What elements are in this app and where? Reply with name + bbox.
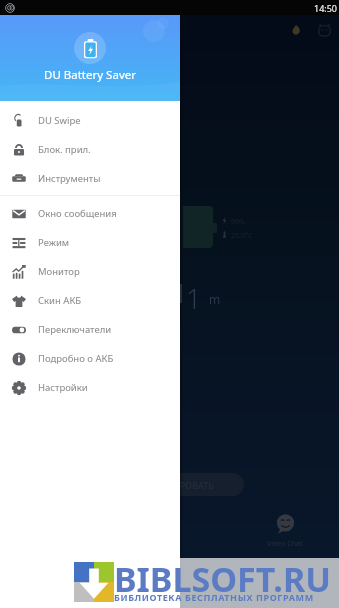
staticText: Монитор bbox=[38, 265, 80, 278]
staticText: Скин АКБ bbox=[38, 294, 82, 307]
button[interactable]: Настройки bbox=[0, 373, 180, 402]
button[interactable]: Profile bbox=[316, 22, 332, 38]
button[interactable]: Переключатели bbox=[0, 315, 180, 344]
button[interactable]: DU Swipe bbox=[0, 106, 180, 135]
button[interactable]: Блок. прил. bbox=[0, 135, 180, 164]
button[interactable]: Скин АКБ bbox=[0, 286, 180, 315]
button[interactable]: Монитор bbox=[0, 257, 180, 286]
staticText: 14:50 bbox=[314, 2, 338, 14]
button[interactable]: Boost bbox=[288, 22, 304, 38]
staticText: 1 bbox=[186, 280, 202, 317]
button[interactable]: ОПТИМИЗИРОВАТЬ bbox=[96, 473, 244, 496]
button[interactable]: Режим bbox=[0, 228, 180, 257]
button[interactable]: Подробно о АКБ bbox=[0, 344, 180, 373]
staticText: Настройки bbox=[38, 381, 88, 394]
staticText: Блок. прил. bbox=[38, 143, 91, 156]
staticText: ОПТИМИЗИРОВАТЬ bbox=[127, 479, 214, 491]
staticText: Подробно о АКБ bbox=[38, 352, 114, 365]
button[interactable]: Окно сообщения bbox=[0, 199, 180, 228]
other: Status icon bbox=[5, 3, 15, 13]
staticText: DU Battery Saver bbox=[44, 67, 136, 83]
staticText: 25.0°C bbox=[231, 231, 253, 241]
staticText: Video Chat bbox=[267, 539, 303, 549]
staticText: DU Swipe bbox=[38, 114, 81, 127]
staticText: Инструменты bbox=[38, 172, 101, 185]
staticText: BIBLSOFT.RU bbox=[114, 556, 331, 602]
staticText: Режим bbox=[38, 236, 70, 249]
staticText: БИБЛИОТЕКА БЕСПЛАТНЫХ ПРОГРАММ bbox=[114, 591, 314, 603]
staticText: Переключатели bbox=[38, 323, 112, 336]
button[interactable]: Video Chat bbox=[264, 514, 306, 549]
staticText: 99% bbox=[231, 217, 245, 227]
staticText: Окно сообщения bbox=[38, 207, 117, 220]
button[interactable]: Инструменты bbox=[0, 164, 180, 193]
staticText: m bbox=[209, 291, 221, 307]
